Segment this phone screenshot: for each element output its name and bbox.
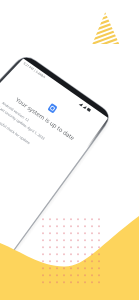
staticText: 5:21 PM | 5.4KB/s (23, 61, 46, 79)
staticText: Android version: 12 (1, 100, 30, 122)
staticText: Last security update: April 1, 2023 (0, 105, 47, 141)
staticText: Your system is up to date (0, 85, 91, 153)
button[interactable]: 5:21 PM | 5.4KB/s (0, 54, 113, 300)
staticText: Successful check for update (0, 115, 32, 145)
other: System update (47, 103, 58, 114)
